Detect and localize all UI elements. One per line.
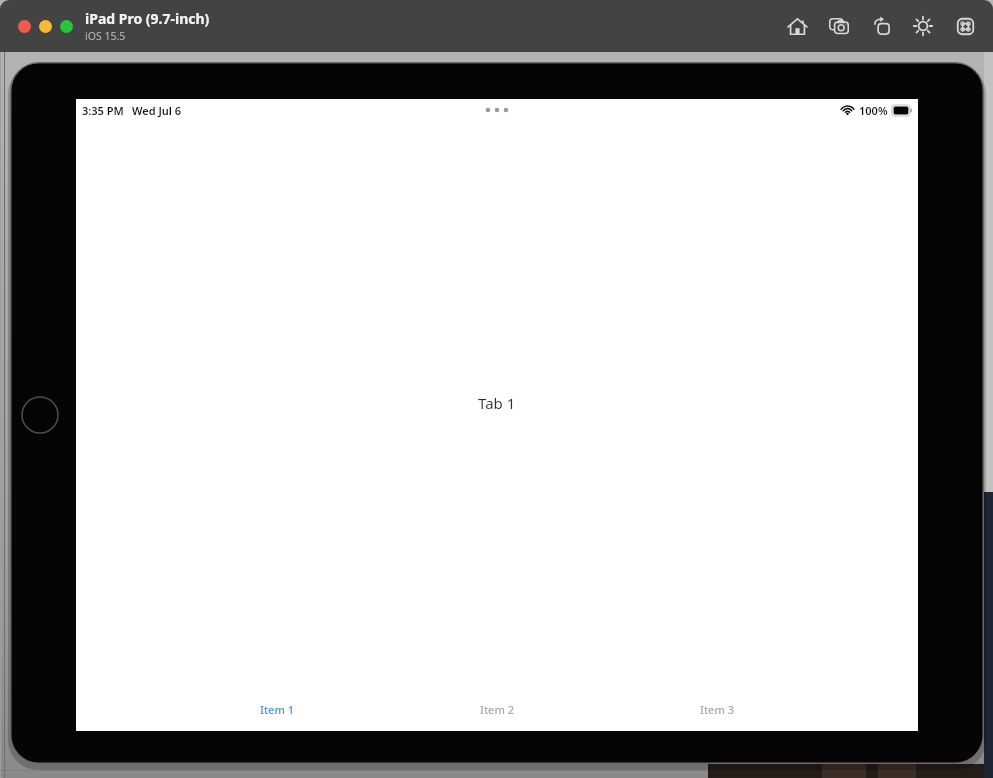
staticText: Item 2 (480, 702, 514, 717)
staticText: iPad Pro (9.7-inch) (85, 9, 210, 28)
button[interactable] (60, 20, 73, 33)
button[interactable]: Keyboard shortcuts (951, 12, 979, 40)
button[interactable]: Screenshot (825, 12, 853, 40)
button[interactable]: Item 2 (387, 682, 607, 731)
button[interactable]: Share (867, 12, 895, 40)
staticText: Item 1 (260, 702, 294, 717)
button[interactable]: Home (783, 12, 811, 40)
button[interactable]: Item 3 (607, 682, 827, 731)
staticText: Tab 1 (478, 393, 516, 413)
staticText: 3:35 PM (82, 103, 124, 118)
button[interactable]: Item 1 (167, 682, 387, 731)
staticText: iOS 15.5 (85, 29, 126, 43)
button[interactable] (39, 20, 52, 33)
staticText: Wed Jul 6 (132, 103, 182, 118)
staticText: Item 3 (700, 702, 734, 717)
button[interactable] (18, 20, 31, 33)
staticText: 100% (859, 103, 888, 118)
button[interactable]: Appearance (909, 12, 937, 40)
